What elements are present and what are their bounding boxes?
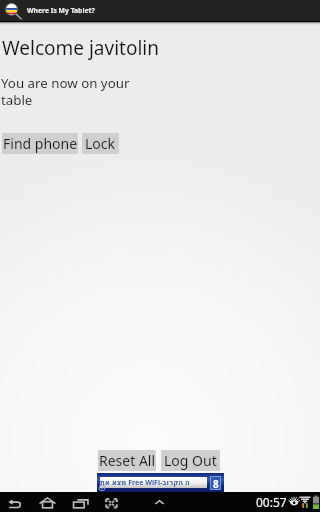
staticText: Lock <box>85 134 116 153</box>
button[interactable]: Log Out <box>161 450 220 471</box>
button[interactable]: Find phone <box>2 133 78 154</box>
staticText: 00:57 <box>256 494 287 510</box>
staticText: You are now on your table <box>1 74 130 108</box>
staticText: מצא את Free WiFi-ה הקרוב אליך <box>100 478 207 488</box>
button[interactable]: Screenshot <box>102 493 121 512</box>
staticText: Where Is My Tablet? <box>27 6 95 15</box>
button[interactable]: Expand <box>150 493 169 512</box>
button[interactable]: Advertisement <box>97 473 224 492</box>
button[interactable]: Back <box>5 493 24 512</box>
button[interactable]: Lock <box>82 133 119 154</box>
staticText: Reset All <box>99 451 156 470</box>
staticText: Log Out <box>164 451 217 470</box>
staticText: Welcome javitolin <box>2 35 159 61</box>
button[interactable]: Recent apps <box>72 493 91 512</box>
button[interactable]: Reset All <box>98 450 156 471</box>
staticText: 8 <box>213 477 219 489</box>
staticText: Find phone <box>3 134 78 153</box>
button[interactable]: Home <box>38 493 57 512</box>
